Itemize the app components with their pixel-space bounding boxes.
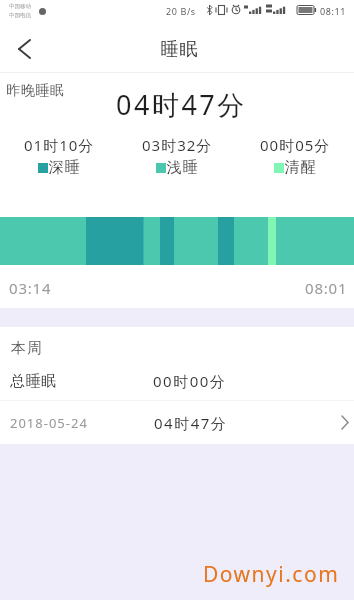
button[interactable]: Back [0,25,48,73]
staticText: 中国电信 [9,12,31,19]
staticText: 20 B/s [166,5,196,17]
staticText: 08:11 [320,5,347,17]
staticText: 03时32分 [142,135,213,155]
staticText: 00时00分 [153,371,227,391]
staticText: 04时47分 [116,86,247,123]
staticText: 2018-05-24 [10,414,88,432]
staticText: 本周 [10,339,43,358]
staticText: 浅睡 [166,158,198,177]
staticText: 08:01 [305,278,348,298]
staticText: 睡眠 [160,38,198,61]
staticText: 总睡眠 [10,372,57,391]
staticText: 04时47分 [154,413,228,433]
button[interactable]: 2018-05-24 [0,401,354,444]
staticText: 深睡 [48,158,80,177]
staticText: 00时05分 [260,135,331,155]
staticText: 中国移动 [9,3,31,10]
staticText: Downyi.com [203,560,340,589]
staticText: 03:14 [9,278,52,298]
staticText: 清醒 [284,158,316,177]
staticText: 昨晚睡眠 [6,82,64,100]
staticText: 01时10分 [24,135,95,155]
